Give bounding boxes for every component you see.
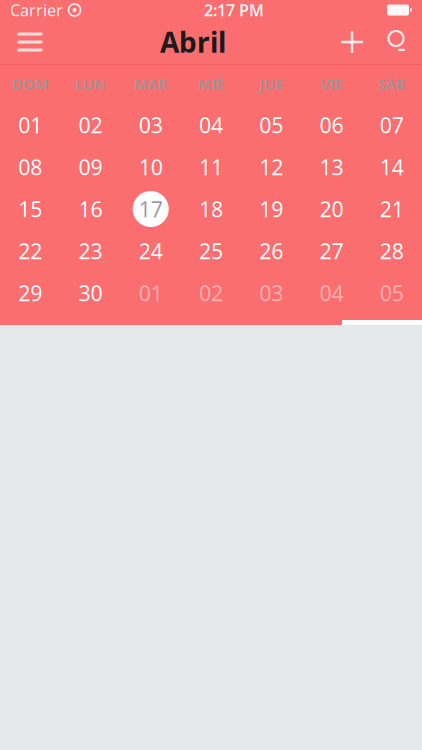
staticText: Abril xyxy=(160,23,226,61)
staticText: 01 xyxy=(139,279,163,307)
button[interactable]: 02 xyxy=(68,104,112,146)
button[interactable]: 03 xyxy=(249,272,293,314)
button[interactable]: 19 xyxy=(249,188,293,230)
button[interactable]: 24 xyxy=(129,230,173,272)
staticText: 15 xyxy=(18,195,42,223)
staticText: 24 xyxy=(139,237,163,265)
button[interactable]: 10 xyxy=(129,146,173,188)
staticText: 20 xyxy=(320,195,344,223)
staticText: 07 xyxy=(380,111,404,139)
staticText: 10 xyxy=(139,153,163,181)
staticText: 05 xyxy=(259,111,283,139)
button[interactable]: 04 xyxy=(310,272,354,314)
button[interactable]: 25 xyxy=(189,230,233,272)
button[interactable]: 18 xyxy=(189,188,233,230)
staticText: 09 xyxy=(78,153,102,181)
button[interactable]: Add event xyxy=(330,20,374,64)
button[interactable]: 16 xyxy=(68,188,112,230)
staticText: 11 xyxy=(199,153,223,181)
button[interactable]: 22 xyxy=(8,230,52,272)
button[interactable]: 01 xyxy=(129,272,173,314)
staticText: 04 xyxy=(199,111,223,139)
button[interactable]: 23 xyxy=(68,230,112,272)
staticText: 18 xyxy=(199,195,223,223)
staticText: 03 xyxy=(259,279,283,307)
staticText: 03 xyxy=(139,111,163,139)
button[interactable]: Menu xyxy=(4,20,56,64)
staticText: 05 xyxy=(380,279,404,307)
staticText: MAR xyxy=(134,74,167,94)
staticText: 21 xyxy=(380,195,404,223)
button[interactable]: 04 xyxy=(189,104,233,146)
button[interactable]: 03 xyxy=(129,104,173,146)
staticText: 08 xyxy=(18,153,42,181)
staticText: 26 xyxy=(259,237,283,265)
staticText: 22 xyxy=(18,237,42,265)
button[interactable]: 29 xyxy=(8,272,52,314)
staticText: 2:17 PM xyxy=(204,0,264,21)
button[interactable]: 15 xyxy=(8,188,52,230)
staticText: 27 xyxy=(320,237,344,265)
button[interactable]: 07 xyxy=(370,104,414,146)
button[interactable]: 01 xyxy=(8,104,52,146)
staticText: 25 xyxy=(199,237,223,265)
button[interactable]: 27 xyxy=(310,230,354,272)
button[interactable]: 13 xyxy=(310,146,354,188)
button[interactable]: 26 xyxy=(249,230,293,272)
staticText: 13 xyxy=(320,153,344,181)
staticText: Carrier xyxy=(10,0,63,21)
button[interactable]: 20 xyxy=(310,188,354,230)
staticText: LUN xyxy=(75,74,106,94)
staticText: VIE xyxy=(321,74,343,94)
button[interactable]: 28 xyxy=(370,230,414,272)
button[interactable]: 05 xyxy=(249,104,293,146)
staticText: MIÉ xyxy=(197,74,224,94)
staticText: 06 xyxy=(320,111,344,139)
staticText: 12 xyxy=(259,153,283,181)
staticText: 14 xyxy=(380,153,404,181)
staticText: 19 xyxy=(259,195,283,223)
staticText: DOM xyxy=(12,74,49,94)
button[interactable]: 21 xyxy=(370,188,414,230)
button[interactable]: Search xyxy=(374,20,418,64)
staticText: 17 xyxy=(139,195,163,223)
staticText: 29 xyxy=(18,279,42,307)
button[interactable]: 09 xyxy=(68,146,112,188)
button[interactable]: 08 xyxy=(8,146,52,188)
button[interactable]: 17 xyxy=(129,188,173,230)
button[interactable]: 11 xyxy=(189,146,233,188)
staticText: 16 xyxy=(78,195,102,223)
staticText: 02 xyxy=(199,279,223,307)
staticText: 30 xyxy=(78,279,102,307)
button[interactable]: 02 xyxy=(189,272,233,314)
staticText: 28 xyxy=(380,237,404,265)
button[interactable]: 06 xyxy=(310,104,354,146)
staticText: 01 xyxy=(18,111,42,139)
button[interactable]: 14 xyxy=(370,146,414,188)
button[interactable]: 30 xyxy=(68,272,112,314)
staticText: JUE xyxy=(259,74,283,94)
button[interactable]: 12 xyxy=(249,146,293,188)
staticText: SÁB xyxy=(378,74,406,94)
button[interactable]: 05 xyxy=(370,272,414,314)
staticText: 02 xyxy=(78,111,102,139)
staticText: 04 xyxy=(320,279,344,307)
staticText: 23 xyxy=(78,237,102,265)
